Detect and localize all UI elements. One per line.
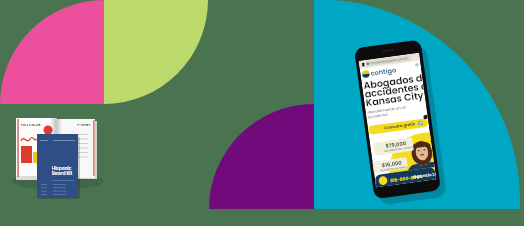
button[interactable]: Contigo marketing banner — [0, 0, 524, 226]
